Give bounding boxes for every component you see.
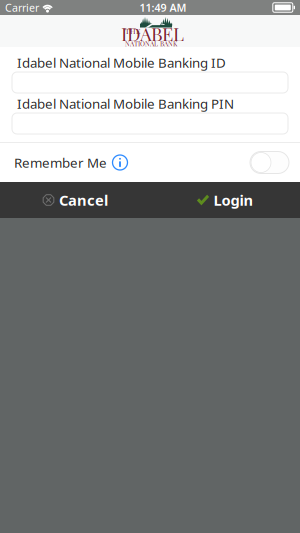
staticText: 11:49 AM (139, 0, 186, 15)
staticText: Login (213, 190, 253, 210)
button[interactable]: Remember Me toggle (250, 151, 289, 173)
button[interactable]: Cancel (0, 182, 150, 218)
staticText: Cancel (59, 190, 108, 210)
staticText: NATIONAL BANK (125, 39, 177, 48)
button[interactable]: Login (150, 182, 300, 218)
staticText: THE (125, 26, 140, 36)
staticText: IDABEL (121, 21, 184, 46)
staticText: Carrier (5, 0, 39, 15)
staticText: Idabel National Mobile Banking PIN (17, 95, 234, 112)
staticText: Idabel National Mobile Banking ID (17, 54, 226, 71)
button[interactable]: More info about Remember Me (112, 154, 128, 170)
staticText: Remember Me (14, 154, 107, 171)
